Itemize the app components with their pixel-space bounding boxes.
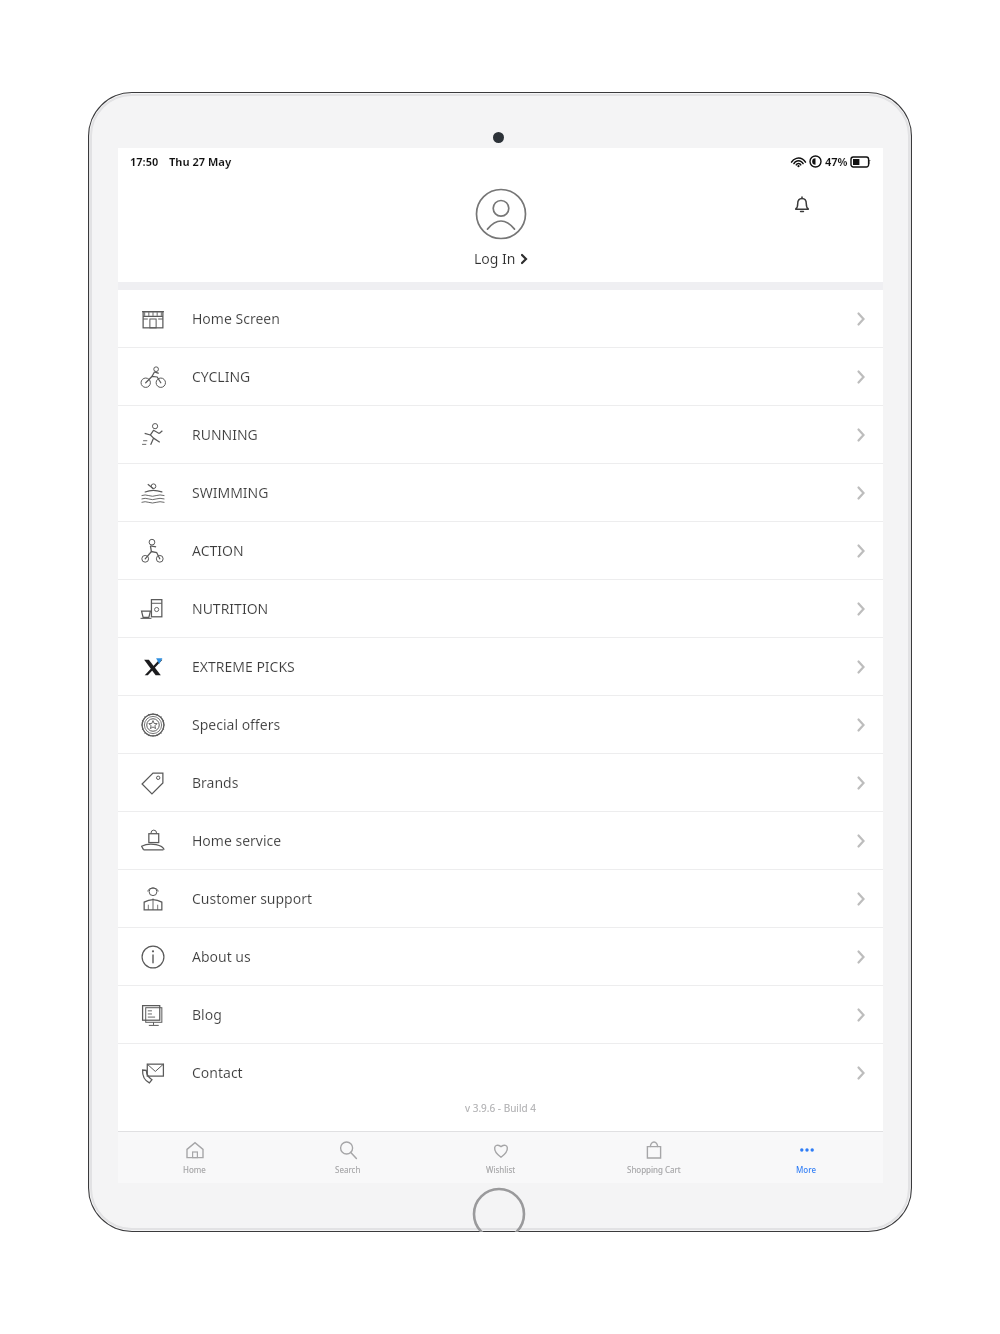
staticText: Brands xyxy=(192,773,239,792)
button[interactable]: About us xyxy=(118,928,883,985)
button[interactable]: Notifications xyxy=(785,188,819,222)
button[interactable]: Home xyxy=(118,1131,271,1183)
staticText: Home service xyxy=(192,831,282,850)
button[interactable]: Blog xyxy=(118,986,883,1043)
staticText: About us xyxy=(192,947,251,966)
button[interactable]: Home Screen xyxy=(118,290,883,347)
staticText: v 3.9.6 - Build 4 xyxy=(118,1101,883,1115)
button[interactable]: Special offers xyxy=(118,696,883,753)
button[interactable]: RUNNING xyxy=(118,406,883,463)
staticText: Log In xyxy=(474,249,516,268)
staticText: Home xyxy=(183,1164,206,1175)
staticText: CYCLING xyxy=(192,367,251,386)
button[interactable]: Wishlist xyxy=(424,1131,577,1183)
staticText: Wishlist xyxy=(486,1164,516,1175)
button[interactable]: Search xyxy=(271,1131,424,1183)
staticText: RUNNING xyxy=(192,425,258,444)
staticText: Home Screen xyxy=(192,309,280,328)
button[interactable]: Home service xyxy=(118,812,883,869)
button[interactable]: Brands xyxy=(118,754,883,811)
staticText: SWIMMING xyxy=(192,483,269,502)
staticText: Thu 27 May xyxy=(169,154,232,169)
button[interactable]: EXTREME PICKS xyxy=(118,638,883,695)
button[interactable]: Customer support xyxy=(118,870,883,927)
button[interactable]: NUTRITION xyxy=(118,580,883,637)
button[interactable]: SWIMMING xyxy=(118,464,883,521)
staticText: NUTRITION xyxy=(192,599,269,618)
staticText: Blog xyxy=(192,1005,222,1024)
button[interactable]: Contact xyxy=(118,1044,883,1101)
button[interactable]: ACTION xyxy=(118,522,883,579)
staticText: Customer support xyxy=(192,889,313,908)
button[interactable]: Log In xyxy=(474,188,527,268)
staticText: Shopping Cart xyxy=(627,1164,681,1175)
staticText: Special offers xyxy=(192,715,281,734)
staticText: Search xyxy=(335,1164,361,1175)
button[interactable]: Shopping Cart xyxy=(577,1131,730,1183)
button[interactable]: More xyxy=(730,1131,883,1183)
staticText: 17:50 xyxy=(130,154,159,169)
staticText: 47% xyxy=(825,154,848,169)
staticText: Contact xyxy=(192,1063,243,1082)
staticText: More xyxy=(796,1164,817,1175)
button[interactable]: CYCLING xyxy=(118,348,883,405)
staticText: EXTREME PICKS xyxy=(192,657,295,676)
staticText: ACTION xyxy=(192,541,244,560)
